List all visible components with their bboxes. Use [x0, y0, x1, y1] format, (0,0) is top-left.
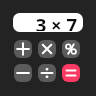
staticText: 3 × 7	[35, 13, 77, 31]
button[interactable]: 3 × 7	[13, 13, 83, 32]
button[interactable]: Multiply	[38, 40, 56, 58]
button[interactable]: Percent	[62, 40, 80, 58]
button[interactable]: Divide	[38, 64, 56, 82]
button[interactable]: Equals	[62, 64, 80, 82]
button[interactable]: Subtract	[14, 64, 32, 82]
button[interactable]: Add	[14, 40, 32, 58]
